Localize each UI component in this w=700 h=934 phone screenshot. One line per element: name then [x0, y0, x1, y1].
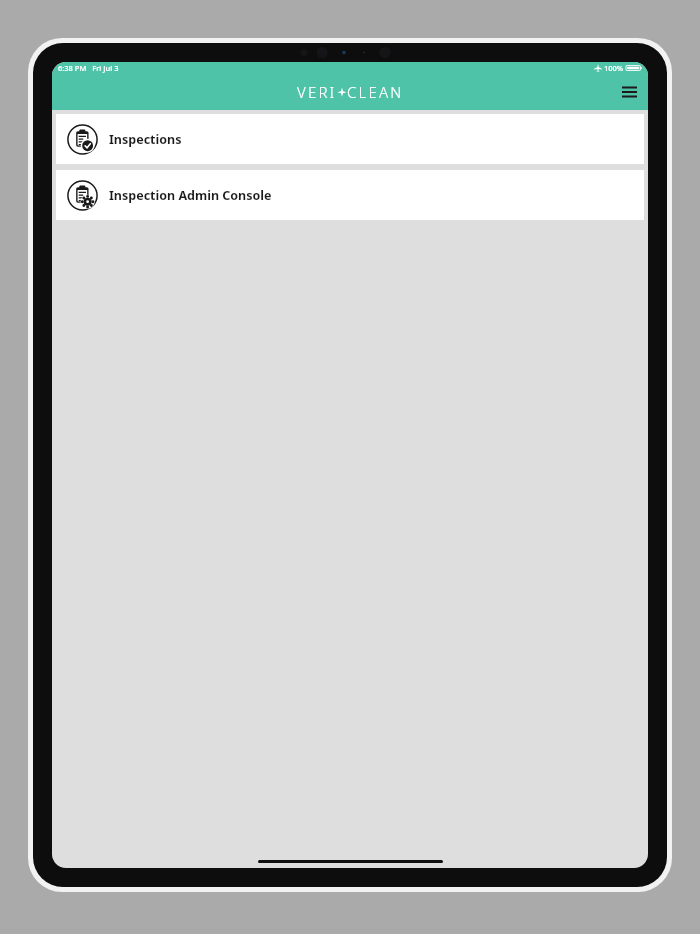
staticText: CLEAN — [347, 82, 404, 102]
staticText: VERI — [297, 82, 337, 102]
staticText: Inspection Admin Console — [109, 187, 272, 204]
staticText: 6:38 PM Fri Jul 3 — [58, 63, 119, 73]
button[interactable]: Open navigation menu — [616, 79, 642, 105]
button[interactable]: Inspections — [56, 114, 644, 164]
button[interactable]: Inspection Admin Console — [56, 170, 644, 220]
staticText: Inspections — [109, 131, 182, 148]
staticText: 100% — [604, 63, 624, 73]
